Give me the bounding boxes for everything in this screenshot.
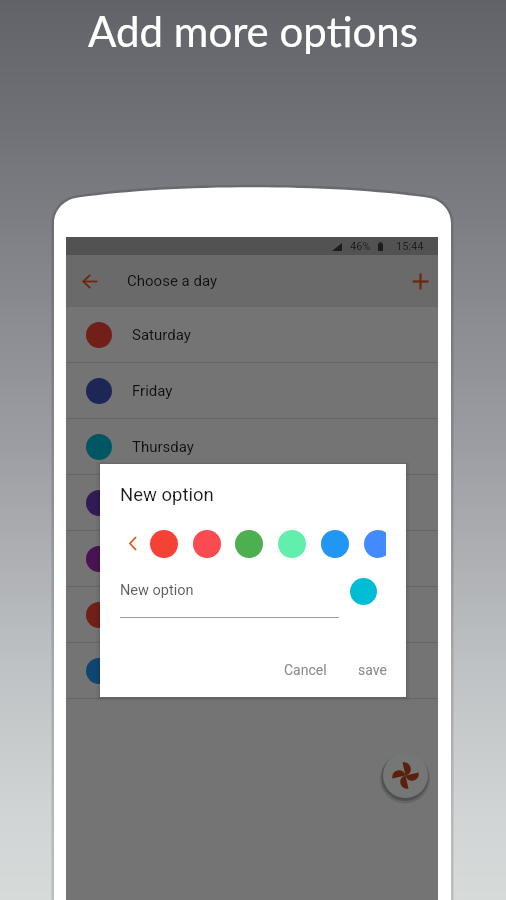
button[interactable]: Saturday bbox=[66, 307, 438, 362]
button[interactable] bbox=[150, 530, 178, 558]
staticText: Monday bbox=[132, 606, 186, 624]
button[interactable]: Tuesday bbox=[66, 531, 438, 586]
staticText: New option bbox=[120, 484, 214, 506]
staticText: Thursday bbox=[132, 438, 194, 456]
button[interactable] bbox=[235, 530, 263, 558]
button[interactable] bbox=[193, 530, 221, 558]
button[interactable]: Selected colour bbox=[350, 578, 377, 605]
staticText: Add more options bbox=[88, 6, 418, 56]
button[interactable]: Back bbox=[69, 260, 111, 302]
staticText: save bbox=[358, 662, 387, 678]
staticText: New option bbox=[120, 582, 194, 599]
button[interactable]: Wednesday bbox=[66, 475, 438, 530]
staticText: Saturday bbox=[132, 326, 191, 344]
button[interactable]: Previous colours bbox=[122, 527, 144, 559]
button[interactable] bbox=[321, 530, 349, 558]
button[interactable]: Sunday bbox=[66, 643, 438, 698]
staticText: Tuesday bbox=[132, 550, 188, 568]
staticText: 15:44 bbox=[396, 240, 424, 253]
staticText: Cancel bbox=[284, 662, 327, 678]
button[interactable] bbox=[364, 530, 386, 558]
staticText: Wednesday bbox=[132, 494, 210, 512]
button[interactable]: New option bbox=[383, 753, 428, 798]
button[interactable]: Friday bbox=[66, 363, 438, 418]
button[interactable]: Cancel bbox=[276, 656, 335, 684]
staticText: Choose a day bbox=[127, 272, 218, 290]
staticText: 46% bbox=[350, 240, 371, 253]
button[interactable]: Add bbox=[399, 260, 441, 302]
button[interactable]: save bbox=[350, 656, 395, 684]
button[interactable]: Monday bbox=[66, 587, 438, 642]
staticText: Friday bbox=[132, 382, 173, 400]
button[interactable]: Thursday bbox=[66, 419, 438, 474]
button[interactable] bbox=[278, 530, 306, 558]
